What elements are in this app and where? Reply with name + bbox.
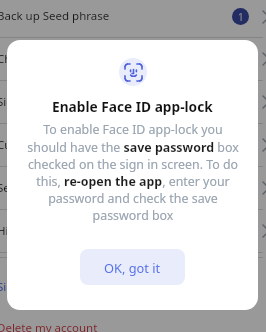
button[interactable]: History <box>0 210 263 252</box>
button[interactable]: OK, got it <box>80 249 185 285</box>
staticText: Security <box>0 180 257 196</box>
staticText: Change password <box>0 51 257 67</box>
staticText: Back up Seed phrase <box>0 8 226 24</box>
staticText: History <box>0 223 257 239</box>
staticText: Enable Face ID app-lock <box>52 97 213 116</box>
staticText: Sign in options <box>0 94 257 110</box>
staticText: Currency <box>0 137 257 153</box>
button[interactable]: Security <box>0 167 263 209</box>
staticText: OK, got it <box>104 259 161 276</box>
button[interactable]: Delete my account <box>0 307 263 332</box>
staticText: 1 <box>238 10 244 24</box>
button[interactable]: Sign in options <box>0 81 263 123</box>
other: Face ID <box>125 64 142 81</box>
staticText: Sign out <box>0 279 42 295</box>
button[interactable]: Back up Seed phrase <box>0 0 263 37</box>
staticText: To enable Face ID app-lock you should ha… <box>24 121 242 223</box>
button[interactable]: Currency <box>0 124 263 166</box>
button[interactable]: Sign out <box>0 266 263 307</box>
button[interactable]: Change password <box>0 38 263 80</box>
staticText: Delete my account <box>0 320 98 332</box>
